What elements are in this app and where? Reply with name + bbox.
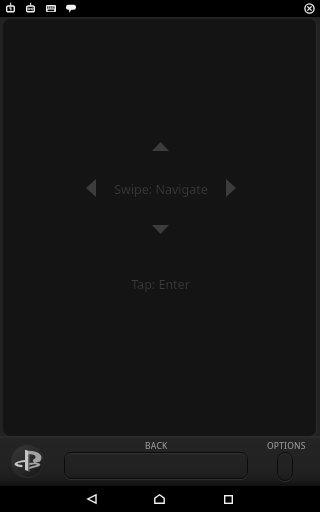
staticText: OPTIONS — [267, 440, 306, 452]
button[interactable]: OPTIONS — [260, 438, 312, 482]
button[interactable]: Home — [139, 486, 179, 512]
staticText: BACK — [145, 440, 168, 452]
button[interactable]: BACK — [64, 438, 248, 480]
staticText: Swipe: Navigate — [114, 181, 208, 198]
button[interactable]: Keyboard — [46, 2, 56, 13]
button[interactable]: PlayStation — [11, 445, 44, 478]
button[interactable]: Second screen — [26, 2, 35, 13]
button[interactable]: Back — [71, 486, 111, 512]
button[interactable]: Close — [304, 3, 315, 14]
staticText: Tap: Enter — [131, 276, 190, 293]
button[interactable]: Messages — [66, 2, 76, 13]
button[interactable]: Recents — [208, 486, 248, 512]
button[interactable]: Remote play — [6, 2, 15, 13]
